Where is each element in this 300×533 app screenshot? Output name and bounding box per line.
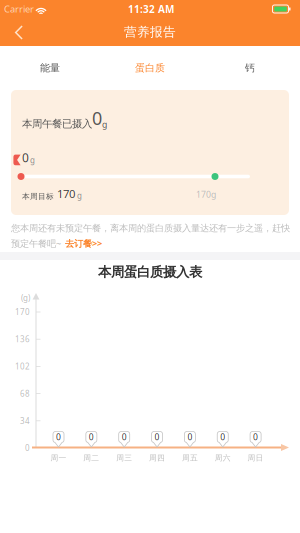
staticText: 170 xyxy=(15,307,30,317)
staticText: 0 xyxy=(56,431,61,443)
staticText: 钙 xyxy=(245,62,255,74)
button[interactable]: Back xyxy=(4,19,33,46)
staticText: 0 xyxy=(253,431,258,443)
staticText: 本周午餐已摄入 xyxy=(22,117,92,130)
staticText: 0 xyxy=(155,431,160,443)
staticText: 0 xyxy=(92,106,102,130)
staticText: 0 xyxy=(89,431,94,443)
staticText: 本周目标 xyxy=(22,191,54,201)
staticText: g xyxy=(102,118,107,130)
staticText: 68 xyxy=(20,388,30,399)
button[interactable]: 去订餐>> xyxy=(65,237,102,249)
staticText: 0 xyxy=(187,431,192,443)
button[interactable]: 能量 xyxy=(0,46,100,90)
staticText: 周日 xyxy=(248,453,264,463)
staticText: (g) xyxy=(21,293,30,303)
staticText: 营养报告 xyxy=(124,24,176,40)
staticText: 0 xyxy=(22,149,29,166)
staticText: 周二 xyxy=(83,453,99,463)
button[interactable]: 钙 xyxy=(200,46,300,90)
staticText: Carrier xyxy=(4,3,34,15)
staticText: 136 xyxy=(15,334,30,345)
staticText: 蛋白质 xyxy=(135,62,165,74)
staticText: 周四 xyxy=(149,453,165,463)
staticText: 170g xyxy=(196,189,216,200)
staticText: g xyxy=(30,155,35,166)
staticText: 周五 xyxy=(182,453,198,463)
staticText: 去订餐>> xyxy=(65,237,102,249)
staticText: 预定午餐吧~ xyxy=(11,237,61,249)
staticText: 11:32 AM xyxy=(128,2,174,16)
staticText: 0 xyxy=(122,431,127,443)
staticText: 102 xyxy=(15,361,30,372)
staticText: 您本周还有未预定午餐，离本周的蛋白质摄入量达还有一步之遥，赶快 xyxy=(11,222,290,234)
staticText: 0 xyxy=(220,431,225,443)
staticText: 本周蛋白质摄入表 xyxy=(98,264,202,280)
staticText: 0 xyxy=(25,443,30,453)
button[interactable]: 蛋白质 xyxy=(100,46,200,90)
staticText: 170 xyxy=(54,186,75,201)
staticText: 周一 xyxy=(50,453,66,463)
staticText: 周三 xyxy=(116,453,132,463)
staticText: g xyxy=(75,190,82,201)
staticText: 34 xyxy=(20,415,30,426)
staticText: 周六 xyxy=(215,453,231,463)
staticText: 能量 xyxy=(40,62,60,74)
